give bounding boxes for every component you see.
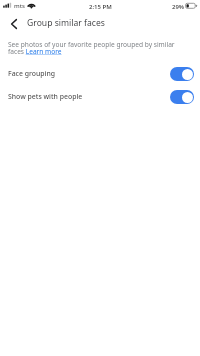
- button[interactable]: Back: [0, 14, 24, 32]
- staticText: Show pets with people: [8, 92, 83, 101]
- staticText: 2:15 PM: [89, 3, 112, 11]
- button[interactable]: Face grouping: [0, 62, 200, 85]
- staticText: Face grouping: [8, 69, 56, 78]
- staticText: See photos of your favorite people group…: [8, 40, 184, 56]
- button[interactable]: Show pets with people: [0, 85, 200, 108]
- button[interactable]: Learn more: [25, 48, 62, 56]
- staticText: 29%: [172, 3, 185, 11]
- staticText: mts: [14, 2, 25, 10]
- staticText: Group similar faces: [27, 17, 105, 29]
